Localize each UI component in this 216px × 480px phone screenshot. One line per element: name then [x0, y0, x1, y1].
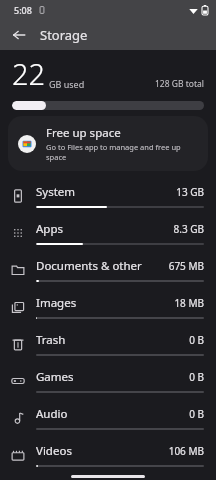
staticText: Free up space — [46, 125, 121, 141]
staticText: Documents & other — [36, 258, 142, 274]
button[interactable]: Images — [0, 288, 216, 325]
staticText: 22 — [12, 54, 46, 93]
staticText: Apps — [36, 221, 64, 237]
staticText: Trash — [36, 332, 66, 348]
staticText: 0 B — [189, 333, 204, 347]
staticText: Audio — [36, 406, 68, 422]
button[interactable]: System — [0, 177, 216, 214]
staticText: 128 GB total — [155, 78, 204, 90]
staticText: 13 GB — [176, 185, 204, 199]
button[interactable]: Apps — [0, 214, 216, 251]
button[interactable]: Documents & other — [0, 251, 216, 288]
staticText: Games — [36, 369, 74, 385]
staticText: Go to Files app to manage and free up sp… — [46, 142, 198, 162]
button[interactable]: Trash — [0, 325, 216, 362]
staticText: 0 B — [189, 370, 204, 384]
button[interactable]: Videos — [0, 436, 216, 473]
staticText: 0 B — [189, 407, 204, 421]
staticText: 18 MB — [174, 296, 204, 310]
button[interactable]: Audio — [0, 399, 216, 436]
staticText: 106 MB — [168, 444, 204, 458]
staticText: Videos — [36, 443, 72, 459]
button[interactable]: Back — [6, 22, 32, 48]
staticText: System — [36, 184, 76, 200]
staticText: 675 MB — [168, 259, 204, 273]
button[interactable]: Free up space — [8, 116, 208, 171]
staticText: 5:08 — [14, 4, 32, 16]
staticText: 8.3 GB — [173, 222, 204, 236]
staticText: Storage — [40, 26, 88, 44]
button[interactable]: Games — [0, 362, 216, 399]
staticText: GB used — [49, 78, 85, 90]
staticText: Images — [36, 295, 77, 311]
